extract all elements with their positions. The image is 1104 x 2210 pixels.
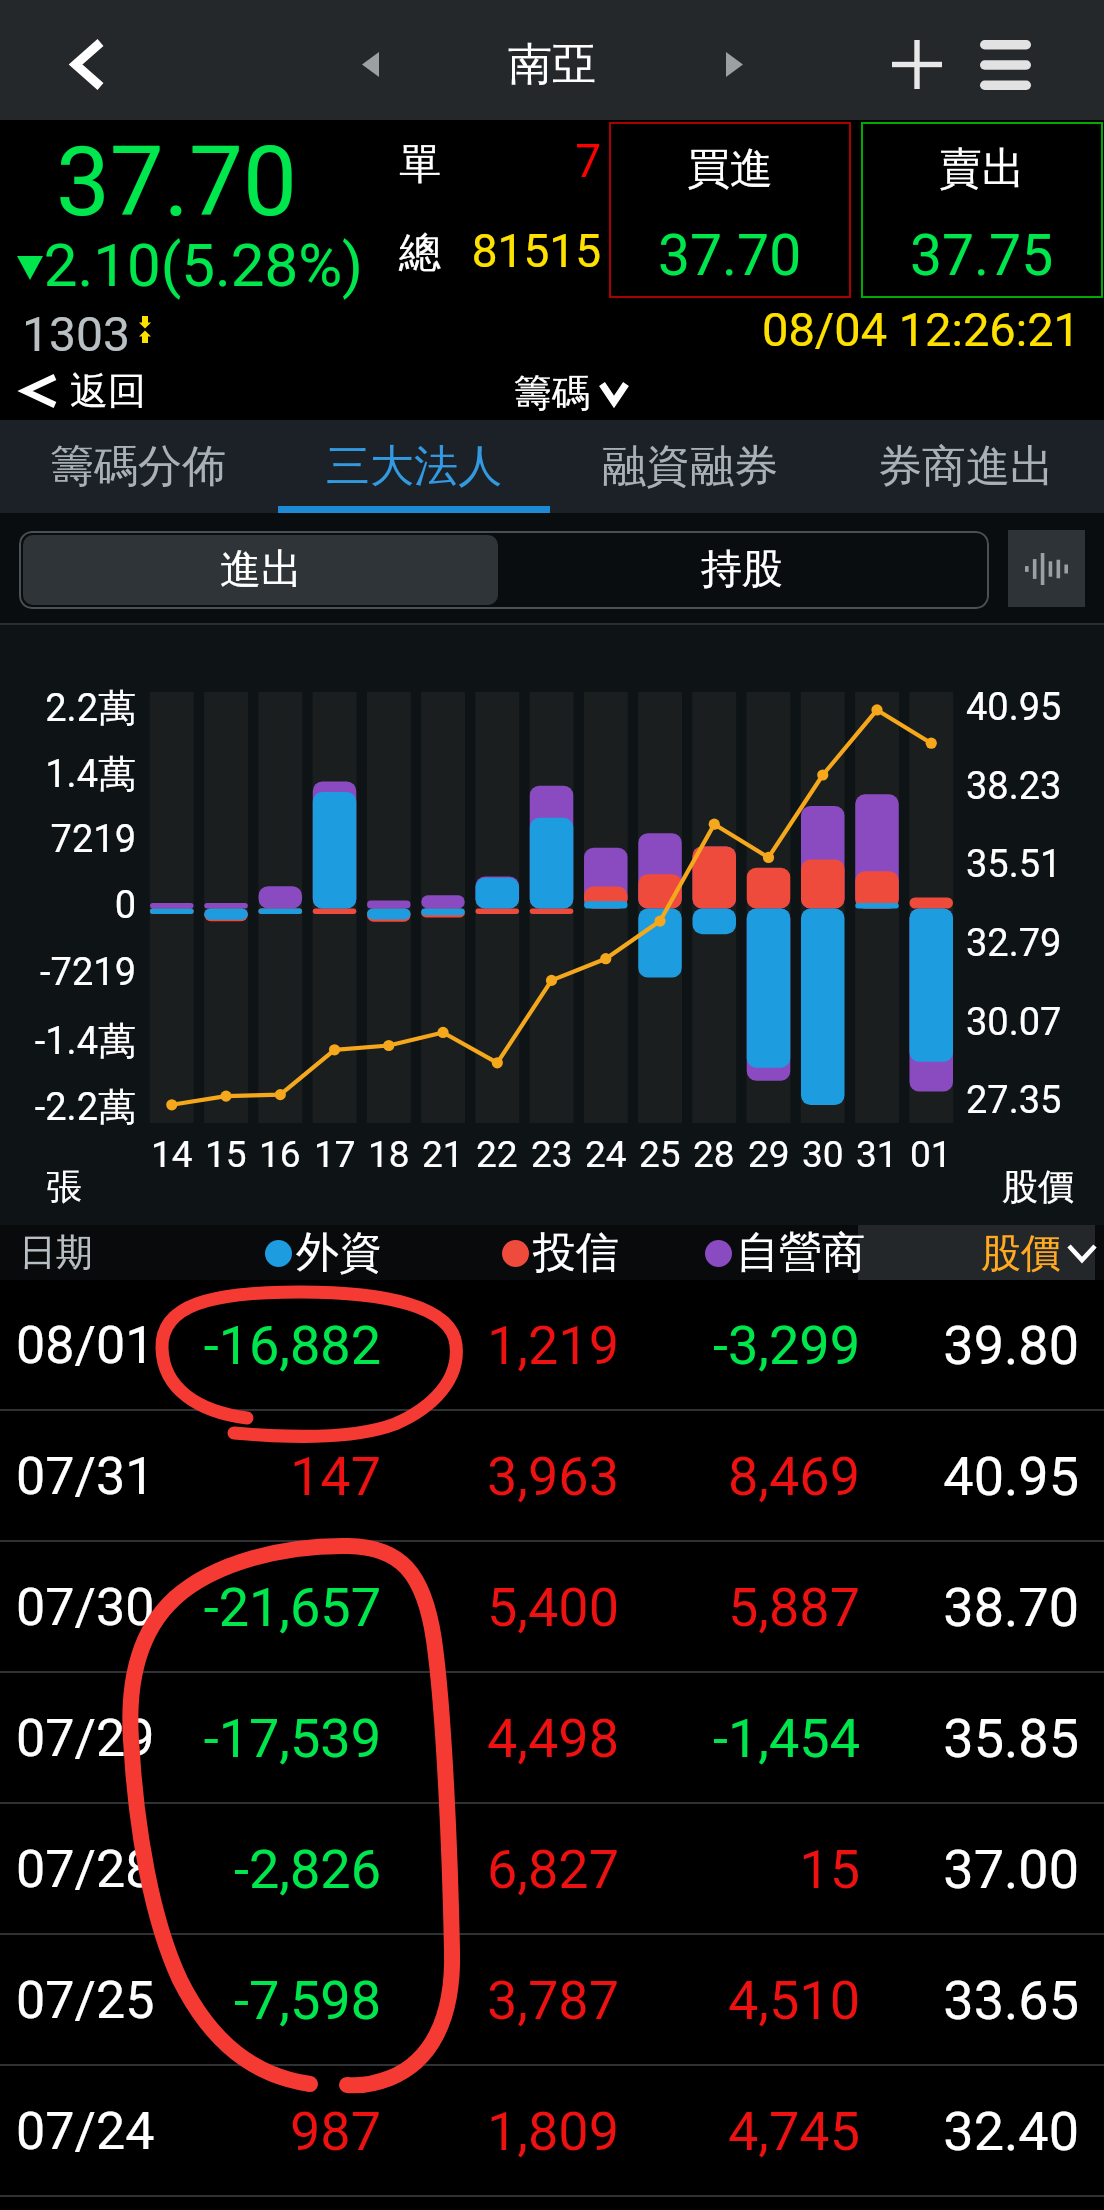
staticText: 1,809 bbox=[319, 2100, 619, 2163]
staticText: 147 bbox=[81, 1445, 381, 1508]
button[interactable]: 籌碼 bbox=[514, 367, 626, 419]
button[interactable]: 籌碼分佈 bbox=[0, 420, 276, 513]
button[interactable]: 07/25 bbox=[0, 1935, 1104, 2066]
button[interactable]: 賣出 bbox=[861, 122, 1103, 298]
staticText: -2,826 bbox=[81, 1838, 381, 1901]
button[interactable]: 投信 bbox=[502, 1226, 619, 1280]
staticText: 3,963 bbox=[319, 1445, 619, 1508]
button[interactable]: 持股 bbox=[498, 535, 985, 605]
button[interactable]: 07/28 bbox=[0, 1804, 1104, 1935]
staticText: 37.75 bbox=[910, 222, 1054, 289]
button[interactable]: 券商進出 bbox=[828, 420, 1104, 513]
staticText: 38.70 bbox=[819, 1576, 1079, 1639]
staticText: 37.00 bbox=[819, 1838, 1079, 1901]
button[interactable]: Next stock bbox=[689, 5, 779, 124]
button[interactable]: 買進 bbox=[609, 122, 851, 298]
staticText: 持股 bbox=[701, 544, 783, 596]
staticText: 07/25 bbox=[16, 1970, 155, 2031]
button[interactable]: Back bbox=[0, 4, 175, 124]
staticText: 37.70 bbox=[0, 126, 297, 239]
staticText: 28 bbox=[693, 1133, 735, 1176]
button[interactable]: 07/29 bbox=[0, 1673, 1104, 1804]
button[interactable]: Chart view bbox=[1008, 530, 1085, 607]
staticText: 35.85 bbox=[819, 1707, 1079, 1770]
staticText: 01 bbox=[910, 1133, 952, 1176]
staticText: 07/24 bbox=[16, 2101, 155, 2162]
staticText: 08/04 12:26:21 bbox=[762, 302, 1080, 357]
staticText: 籌碼分佈 bbox=[50, 439, 226, 494]
staticText: 3,787 bbox=[319, 1969, 619, 2032]
staticText: 14 bbox=[151, 1133, 193, 1176]
staticText: 總 bbox=[399, 227, 441, 280]
button[interactable]: Add bbox=[857, 5, 977, 124]
button[interactable]: 07/24 bbox=[0, 2066, 1104, 2197]
staticText: 6,827 bbox=[319, 1838, 619, 1901]
staticText: 2.10(5.28%) bbox=[0, 230, 363, 300]
staticText: 16 bbox=[259, 1133, 301, 1176]
button[interactable]: 外資 bbox=[265, 1226, 382, 1280]
staticText: -16,882 bbox=[81, 1314, 381, 1377]
staticText: 8,469 bbox=[560, 1445, 860, 1508]
staticText: 股價 bbox=[981, 1228, 1061, 1278]
staticText: 5,887 bbox=[560, 1576, 860, 1639]
staticText: 4,745 bbox=[560, 2100, 860, 2163]
staticText: 4,498 bbox=[319, 1707, 619, 1770]
staticText: 賣出 bbox=[939, 142, 1025, 196]
button[interactable]: 股價 bbox=[858, 1225, 1095, 1280]
staticText: 30 bbox=[802, 1133, 844, 1176]
staticText: -3,299 bbox=[560, 1314, 860, 1377]
button[interactable]: 07/31 bbox=[0, 1411, 1104, 1542]
staticText: 1.4萬 bbox=[0, 750, 136, 798]
button[interactable]: 返回 bbox=[22, 365, 146, 417]
staticText: 券商進出 bbox=[878, 439, 1054, 494]
staticText: 32.40 bbox=[819, 2100, 1079, 2163]
staticText: 18 bbox=[368, 1133, 410, 1176]
staticText: 進出 bbox=[220, 544, 302, 596]
staticText: 07/30 bbox=[16, 1577, 155, 1638]
staticText: -7,598 bbox=[81, 1969, 381, 2032]
staticText: 21 bbox=[422, 1133, 464, 1176]
staticText: 三大法人 bbox=[326, 439, 502, 494]
staticText: 40.95 bbox=[819, 1445, 1079, 1508]
staticText: 22 bbox=[476, 1133, 518, 1176]
staticText: 07/29 bbox=[16, 1708, 155, 1769]
staticText: 24 bbox=[585, 1133, 627, 1176]
staticText: 投信 bbox=[533, 1226, 619, 1280]
staticText: 2.2萬 bbox=[0, 684, 136, 732]
button[interactable]: Previous stock bbox=[325, 5, 415, 124]
staticText: -21,657 bbox=[81, 1576, 381, 1639]
staticText: 1303 bbox=[22, 306, 130, 362]
staticText: 23 bbox=[531, 1133, 573, 1176]
staticText: 25 bbox=[639, 1133, 681, 1176]
button[interactable]: 融資融券 bbox=[552, 420, 828, 513]
staticText: 日期 bbox=[19, 1229, 93, 1276]
staticText: 外資 bbox=[296, 1226, 382, 1280]
staticText: 1,219 bbox=[319, 1314, 619, 1377]
staticText: 買進 bbox=[687, 142, 773, 196]
staticText: -2.2萬 bbox=[0, 1083, 136, 1131]
staticText: 融資融券 bbox=[602, 439, 778, 494]
staticText: 37.70 bbox=[658, 222, 802, 289]
staticText: 07/28 bbox=[16, 1839, 155, 1900]
staticText: 38.23 bbox=[966, 764, 1062, 809]
staticText: 17 bbox=[314, 1133, 356, 1176]
staticText: 27.35 bbox=[966, 1078, 1062, 1123]
staticText: 0 bbox=[0, 883, 136, 928]
staticText: 自營商 bbox=[736, 1226, 865, 1280]
button[interactable]: Menu bbox=[945, 5, 1065, 124]
staticText: 單 bbox=[399, 138, 441, 191]
staticText: 81515 bbox=[443, 224, 601, 278]
staticText: 987 bbox=[81, 2100, 381, 2163]
staticText: 股價 bbox=[1002, 1164, 1074, 1209]
staticText: -1.4萬 bbox=[0, 1017, 136, 1065]
staticText: 08/01 bbox=[16, 1315, 155, 1376]
button[interactable]: 07/30 bbox=[0, 1542, 1104, 1673]
staticText: 39.80 bbox=[819, 1314, 1079, 1377]
staticText: 南亞 bbox=[508, 37, 596, 92]
button[interactable]: 進出 bbox=[23, 535, 498, 605]
staticText: 15 bbox=[560, 1838, 860, 1901]
button[interactable]: 08/01 bbox=[0, 1280, 1104, 1411]
button[interactable]: 三大法人 bbox=[276, 420, 552, 513]
staticText: -7219 bbox=[0, 950, 136, 995]
button[interactable]: 自營商 bbox=[705, 1226, 865, 1280]
